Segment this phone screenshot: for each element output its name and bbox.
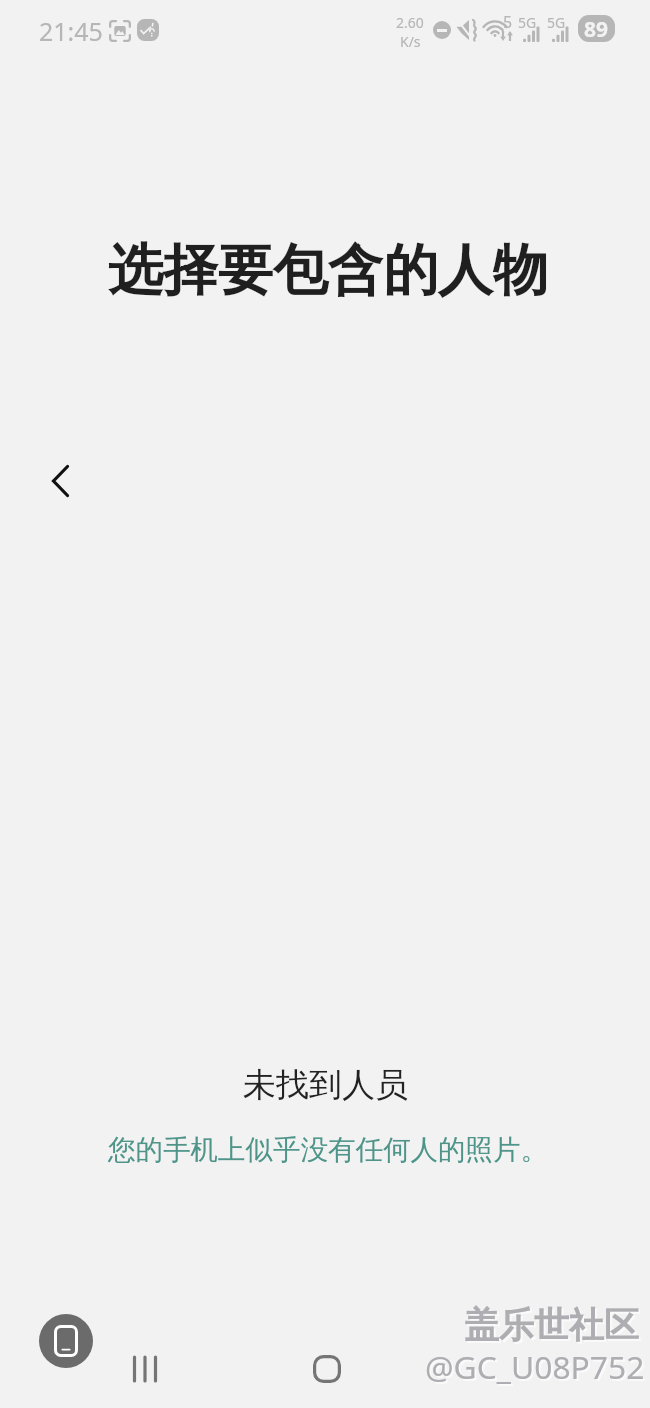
staticText: 5G bbox=[547, 13, 566, 32]
staticText: 盖乐世社区 bbox=[466, 1305, 641, 1349]
staticText: 选择要包含的人物 bbox=[108, 236, 548, 305]
staticText: 21:45 bbox=[39, 14, 103, 48]
staticText: 5 bbox=[503, 11, 513, 33]
staticText: @GC_U08P752 bbox=[427, 1347, 647, 1390]
staticText: @GC_U08P752 bbox=[425, 1345, 645, 1388]
staticText: 5G bbox=[518, 13, 537, 32]
staticText: 您的手机上似乎没有任何人的照片。 bbox=[108, 1133, 548, 1168]
button[interactable]: Back bbox=[24, 445, 96, 517]
button[interactable]: Recents bbox=[113, 1337, 177, 1401]
staticText: 89 bbox=[584, 15, 609, 42]
button[interactable]: Phone bbox=[39, 1314, 93, 1368]
staticText: K/s bbox=[400, 32, 421, 51]
button[interactable]: Home bbox=[295, 1337, 359, 1401]
staticText: 未找到人员 bbox=[243, 1064, 408, 1106]
staticText: 盖乐世社区 bbox=[464, 1303, 639, 1347]
staticText: 2.60 bbox=[396, 13, 424, 32]
